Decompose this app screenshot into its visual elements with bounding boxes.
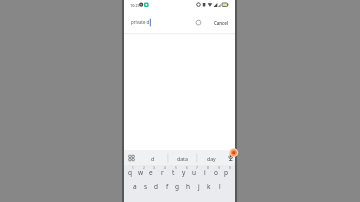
staticText: k [207,182,211,191]
button[interactable]: d [143,151,163,165]
button[interactable]: g [172,179,182,193]
staticText: j [198,182,200,191]
staticText: h [186,182,191,191]
staticText: 0 [229,166,231,170]
staticText: p [224,168,228,177]
button[interactable]: q [125,165,135,179]
button[interactable]: p [221,165,231,179]
button[interactable]: j [194,179,204,193]
button[interactable]: k [204,179,214,193]
staticText: d [151,155,155,162]
staticText: e [149,168,153,177]
staticText: d [154,182,158,191]
button[interactable]: data [170,151,194,165]
button[interactable]: i [200,165,210,179]
staticText: l [219,182,221,191]
staticText: 6 [186,166,188,170]
staticText: 2 [143,166,145,170]
button[interactable]: o [211,165,221,179]
staticText: r [161,168,164,177]
staticText: 8 [207,166,209,170]
staticText: private d [131,19,150,25]
button[interactable]: w [136,165,146,179]
button[interactable]: y [179,165,189,179]
staticText: i [204,168,206,177]
button[interactable]: f [162,179,172,193]
staticText: 3 [153,166,155,170]
staticText: 9 [218,166,220,170]
button[interactable]: day [200,151,222,165]
button[interactable]: e [146,165,156,179]
staticText: t [172,168,175,177]
staticText: w [138,168,144,177]
staticText: day [207,155,216,162]
staticText: 7 [196,166,198,170]
staticText: Cancel [214,20,228,26]
button[interactable]: t [168,165,178,179]
button[interactable]: h [183,179,193,193]
staticText: 5 [175,166,177,170]
button[interactable]: d [151,179,161,193]
staticText: 1 [132,166,134,170]
button[interactable]: l [215,179,225,193]
button[interactable]: u [189,165,199,179]
staticText: o [214,168,218,177]
staticText: a [133,182,137,191]
staticText: 4 [164,166,166,170]
staticText: 10:27 [130,3,140,8]
button[interactable]: Cancel [209,16,233,30]
staticText: u [192,168,197,177]
button[interactable]: a [130,179,140,193]
staticText: q [128,168,132,177]
button[interactable]: r [157,165,167,179]
staticText: y [182,168,186,177]
staticText: f [166,182,169,191]
staticText: data [177,155,188,162]
staticText: g [175,182,179,191]
staticText: s [144,182,148,191]
button[interactable]: s [141,179,151,193]
